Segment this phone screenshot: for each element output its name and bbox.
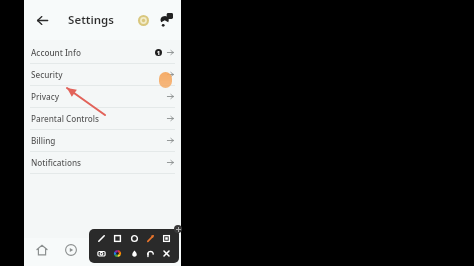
staticText: Billing — [31, 135, 56, 146]
staticText: Privacy — [31, 91, 60, 102]
button[interactable]: Arrow — [144, 232, 157, 245]
button[interactable]: Close — [160, 247, 173, 260]
staticText: 1 — [157, 50, 160, 56]
button[interactable]: Ellipse — [128, 232, 141, 245]
button[interactable]: Home — [30, 238, 54, 262]
button[interactable]: Parental Controls — [24, 108, 181, 129]
button[interactable]: Rewards — [132, 9, 154, 31]
button[interactable]: Play — [59, 238, 83, 262]
staticText: Settings — [68, 12, 114, 28]
button[interactable]: Pen — [95, 232, 108, 245]
button[interactable]: Billing — [24, 130, 181, 151]
button[interactable]: Account Info — [24, 42, 181, 63]
button[interactable]: Rectangle — [111, 232, 124, 245]
staticText: Account Info — [31, 47, 81, 58]
button[interactable]: Move toolbar — [174, 225, 182, 233]
button[interactable]: Security — [24, 64, 181, 85]
button[interactable]: Fill — [128, 247, 141, 260]
staticText: Parental Controls — [31, 113, 99, 124]
staticText: Notifications — [31, 157, 81, 168]
button[interactable]: Notifications — [24, 152, 181, 173]
staticText: Security — [31, 69, 63, 80]
button[interactable]: Undo — [144, 247, 157, 260]
button[interactable]: Back — [29, 7, 55, 33]
button[interactable]: Camera — [95, 247, 108, 260]
button[interactable]: Color — [111, 247, 124, 260]
button[interactable]: Notifications — [155, 9, 177, 31]
button[interactable]: Privacy — [24, 86, 181, 107]
button[interactable]: Blur — [160, 232, 173, 245]
